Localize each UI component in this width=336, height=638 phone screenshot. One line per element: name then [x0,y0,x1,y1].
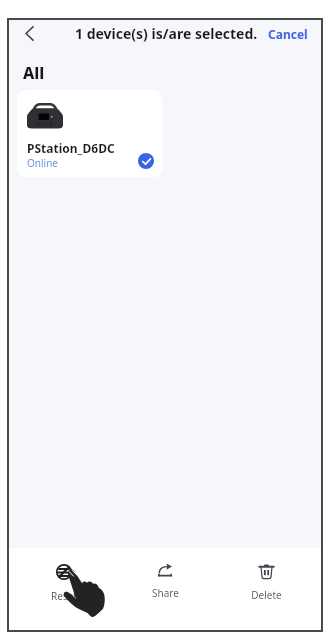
staticText: Share [152,586,179,600]
button[interactable]: Delete [222,548,310,602]
button[interactable]: PStation_D6DC [17,90,162,177]
other: Tap [60,569,105,617]
staticText: All [23,62,45,84]
staticText: Cancel [268,26,308,42]
button[interactable]: Back [14,18,44,48]
button[interactable]: Reset [20,548,108,603]
staticText: PStation_D6DC [27,140,115,156]
button[interactable]: Cancel [265,20,311,48]
button[interactable]: Share [121,548,209,600]
staticText: 1 device(s) is/are selected. [75,24,258,43]
button[interactable]: Selected [138,153,154,169]
staticText: Reset [51,589,77,603]
staticText: Online [27,156,58,170]
staticText: Delete [251,588,282,602]
